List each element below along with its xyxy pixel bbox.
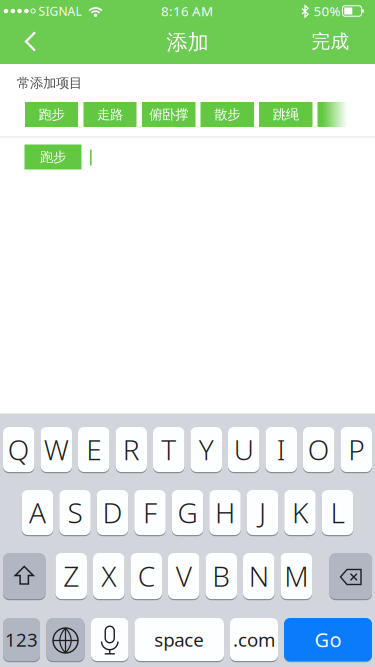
staticText: 123 <box>5 627 38 652</box>
button[interactable]: D <box>97 490 128 537</box>
button[interactable]: Next keyboard <box>46 618 84 663</box>
button[interactable]: W <box>40 427 72 474</box>
staticText: R <box>123 431 140 468</box>
button[interactable]: Go <box>284 618 372 663</box>
staticText: Y <box>199 431 214 468</box>
staticText: P <box>348 431 364 468</box>
button[interactable]: R <box>115 427 147 474</box>
button[interactable]: E <box>78 427 109 474</box>
button[interactable]: .com <box>230 618 278 663</box>
staticText: 50% <box>313 2 340 20</box>
staticText: 添加 <box>166 29 208 56</box>
staticText: W <box>44 431 69 468</box>
button[interactable]: 走路 <box>83 102 136 127</box>
staticText: 跳绳 <box>273 106 299 123</box>
staticText: 跑步 <box>38 106 64 123</box>
staticText: 俯卧撑 <box>149 106 188 123</box>
staticText: U <box>234 431 254 468</box>
staticText: J <box>259 494 266 531</box>
staticText: 走路 <box>97 106 123 123</box>
staticText: D <box>102 494 122 531</box>
button[interactable]: C <box>130 553 162 601</box>
button[interactable]: 跑步 <box>25 102 78 127</box>
button[interactable]: B <box>205 553 237 601</box>
staticText: space <box>154 627 204 652</box>
button[interactable]: 跑步 <box>24 144 81 169</box>
staticText: X <box>101 557 116 595</box>
staticText: 8:16 AM <box>161 2 213 20</box>
button[interactable]: O <box>303 427 334 474</box>
button[interactable]: H <box>209 490 241 537</box>
button[interactable]: 散步 <box>200 102 254 127</box>
staticText: S <box>67 494 82 531</box>
staticText: 跑步 <box>40 149 66 165</box>
button[interactable]: Dictate <box>91 618 128 663</box>
button[interactable]: A <box>22 490 53 537</box>
staticText: H <box>215 494 235 531</box>
staticText: L <box>330 494 344 531</box>
staticText: C <box>138 557 155 595</box>
button[interactable]: P <box>340 427 372 474</box>
staticText: SIGNAL <box>38 3 81 19</box>
button[interactable]: L <box>322 490 353 537</box>
button[interactable]: M <box>280 553 312 601</box>
button[interactable]: I <box>265 427 297 474</box>
button[interactable]: J <box>247 490 278 537</box>
button[interactable]: S <box>59 490 91 537</box>
staticText: I <box>277 431 286 468</box>
button[interactable]: U <box>228 427 259 474</box>
button[interactable]: space <box>134 618 224 663</box>
button[interactable]: V <box>168 553 199 601</box>
staticText: Z <box>63 557 79 595</box>
button[interactable]: G <box>172 490 203 537</box>
staticText: E <box>86 431 101 468</box>
staticText: M <box>284 557 308 595</box>
button[interactable]: Y <box>190 427 222 474</box>
staticText: A <box>29 494 46 531</box>
button[interactable]: K <box>284 490 316 537</box>
button[interactable]: X <box>93 553 124 601</box>
button[interactable]: Delete <box>329 553 372 601</box>
staticText: B <box>212 557 230 595</box>
button[interactable]: 完成 <box>311 30 349 53</box>
staticText: 散步 <box>214 106 240 123</box>
staticText: K <box>292 494 308 531</box>
button[interactable]: Z <box>55 553 87 601</box>
button[interactable]: F <box>134 490 166 537</box>
button[interactable]: 跳绳 <box>259 102 312 127</box>
button[interactable]: 123 <box>3 618 40 663</box>
button[interactable]: Shift <box>3 553 45 601</box>
staticText: F <box>143 494 157 531</box>
button[interactable]: Q <box>3 427 34 474</box>
button[interactable]: Back <box>15 26 45 56</box>
staticText: Q <box>8 431 30 468</box>
staticText: N <box>249 557 269 595</box>
staticText: V <box>176 557 192 595</box>
button[interactable]: N <box>243 553 274 601</box>
staticText: .com <box>233 627 275 652</box>
button[interactable]: 俯卧撑 <box>142 102 195 127</box>
button[interactable]: T <box>153 427 184 474</box>
staticText: 完成 <box>311 30 349 53</box>
staticText: 常添加项目 <box>17 75 82 91</box>
staticText: O <box>308 431 330 468</box>
staticText: T <box>161 431 176 468</box>
staticText: G <box>177 494 197 531</box>
staticText: Go <box>314 626 341 653</box>
